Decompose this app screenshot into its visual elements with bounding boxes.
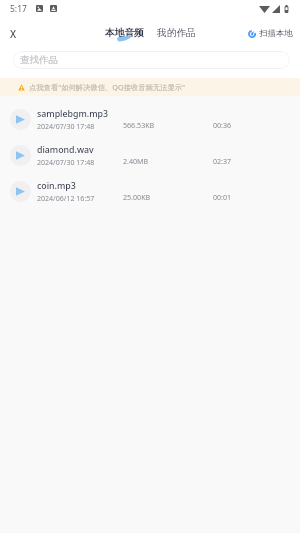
button[interactable]: Play [0,102,300,138]
staticText: 2024/07/30 17:48 [37,121,95,131]
staticText: 5:17 [10,3,27,15]
other: Play [10,109,31,130]
staticText: 02:37 [213,156,232,166]
staticText: 00:01 [213,192,232,202]
staticText: 我的作品 [157,27,196,39]
button[interactable]: Play [0,138,300,174]
staticText: samplebgm.mp3 [37,108,108,120]
staticText: diamond.wav [37,144,94,156]
button[interactable]: Play [0,174,300,210]
button[interactable]: 本地音频 [103,26,146,42]
staticText: coin.mp3 [37,180,76,192]
button[interactable]: 我的作品 [155,26,198,42]
staticText: 查找作品 [20,54,58,66]
staticText: 2024/07/30 17:48 [37,157,95,167]
button[interactable]: 查找作品 [13,51,290,69]
staticText: 2.40MB [123,156,149,166]
button[interactable]: 点我查看"如何解决微信、QQ接收音频无法显示" [0,78,300,96]
staticText: 点我查看"如何解决微信、QQ接收音频无法显示" [29,82,185,92]
staticText: 扫描本地 [259,28,293,39]
staticText: X [10,27,17,41]
other: Play [10,181,31,202]
staticText: 566.53KB [123,120,155,130]
staticText: 25.00KB [123,192,151,202]
staticText: 本地音频 [105,27,144,39]
staticText: 2024/06/12 16:57 [37,193,95,203]
other: Play [10,145,31,166]
button[interactable]: 扫描本地 [245,25,296,42]
button[interactable]: Close [4,24,23,43]
staticText: 00:36 [213,120,232,130]
